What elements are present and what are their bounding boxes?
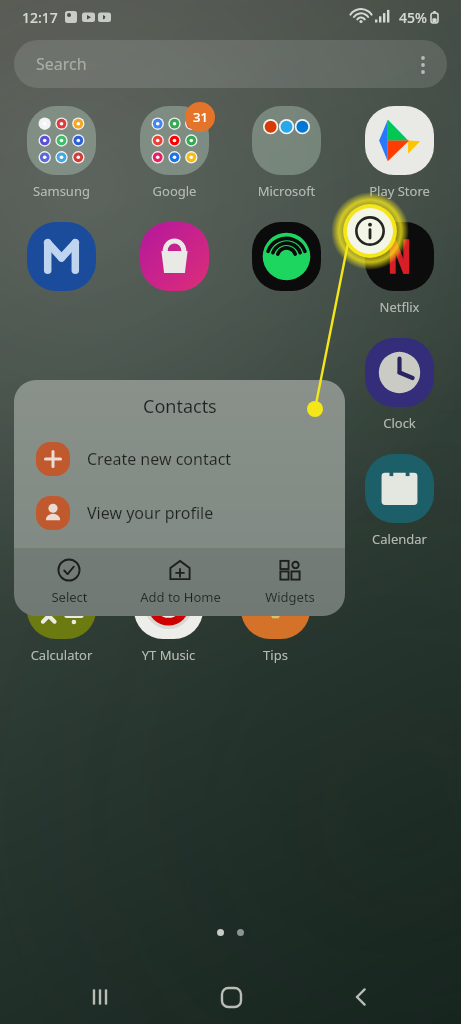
staticText: Search <box>36 53 87 75</box>
button[interactable]: Recent apps <box>70 970 130 1024</box>
staticText: Calendar <box>346 530 453 548</box>
staticText: 31 <box>193 108 208 126</box>
button[interactable]: Netflix <box>346 222 453 316</box>
button[interactable]: Calculator <box>8 570 115 664</box>
staticText: Microsoft <box>233 182 340 200</box>
button[interactable]: Google <box>121 106 228 200</box>
staticText: Select <box>51 588 88 606</box>
button[interactable]: Widgets <box>240 558 340 606</box>
staticText: Create new contact <box>87 448 232 470</box>
button[interactable] <box>121 222 228 314</box>
staticText: Play Store <box>346 182 453 200</box>
button[interactable]: Settings <box>121 454 228 548</box>
button[interactable]: Back <box>331 970 391 1024</box>
staticText: Clock <box>346 414 453 432</box>
staticText: Google <box>121 182 228 200</box>
staticText: 45% <box>399 8 427 27</box>
button[interactable]: View your profile <box>14 486 345 540</box>
staticText: YT Music <box>115 646 222 664</box>
button[interactable]: Samsung <box>8 106 115 200</box>
button[interactable]: Tips <box>222 570 329 664</box>
button[interactable]: Search <box>14 40 447 88</box>
staticText: Samsung <box>8 182 115 200</box>
staticText: Tips <box>222 646 329 664</box>
button[interactable]: Add to Home <box>125 558 235 606</box>
button[interactable]: Select <box>19 558 119 606</box>
button[interactable]: Calendar <box>346 454 453 548</box>
button[interactable]: Microsoft <box>233 106 340 200</box>
staticText: Contacts <box>143 394 217 419</box>
button[interactable]: Create new contact <box>14 432 345 486</box>
staticText: Netflix <box>346 298 453 316</box>
staticText: Calculator <box>8 646 115 664</box>
button[interactable] <box>8 222 115 314</box>
button[interactable]: App info <box>331 192 409 270</box>
button[interactable]: Play Store <box>346 106 453 200</box>
staticText: Add to Home <box>140 588 221 606</box>
staticText: Widgets <box>265 588 315 606</box>
button[interactable] <box>233 222 340 314</box>
button[interactable] <box>8 454 115 546</box>
staticText: View your profile <box>87 502 214 524</box>
button[interactable]: Clock <box>346 338 453 432</box>
button[interactable]: YT Music <box>115 570 222 664</box>
staticText: 12:17 <box>22 8 58 27</box>
button[interactable]: Home <box>201 970 261 1024</box>
